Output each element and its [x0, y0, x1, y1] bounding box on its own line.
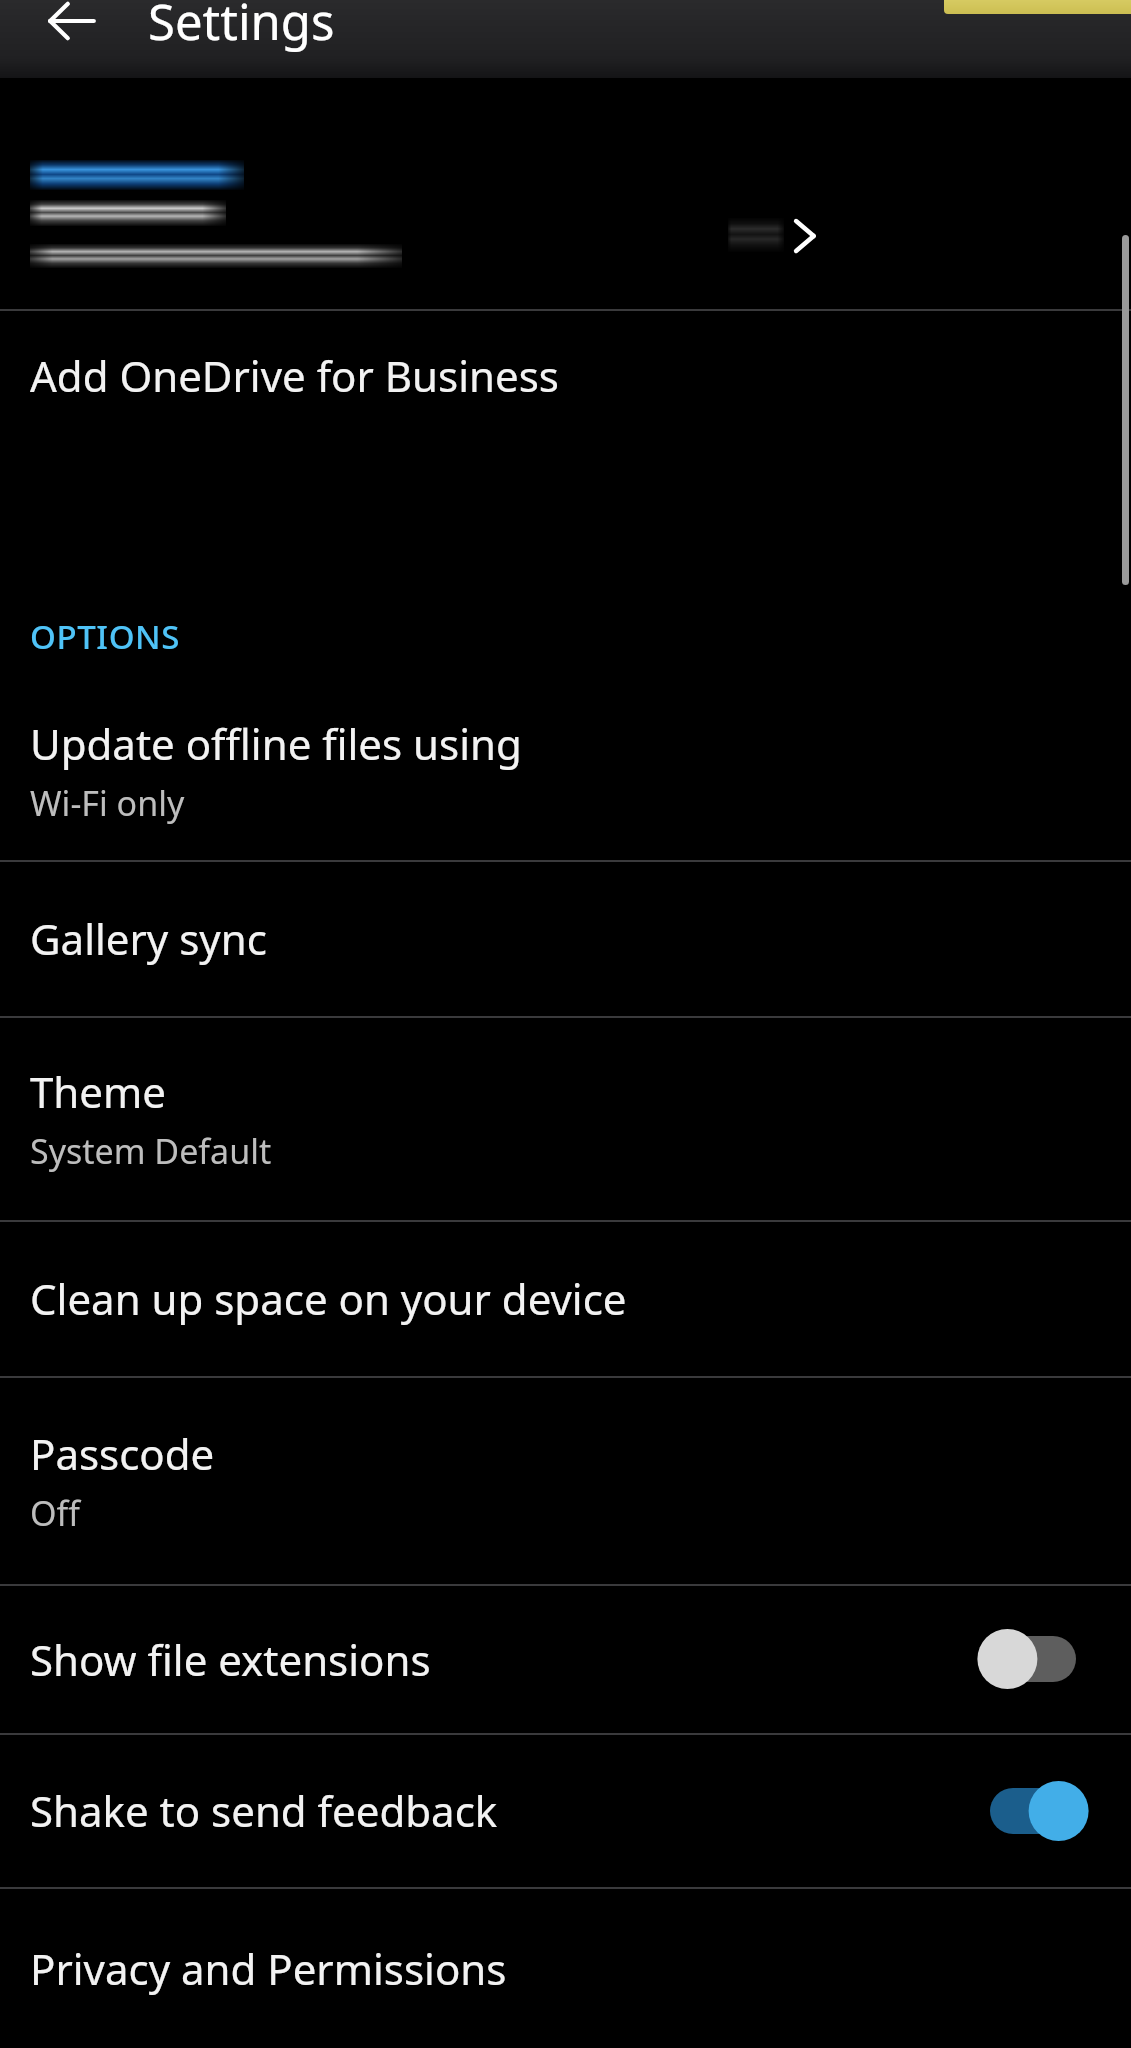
- button[interactable]: Clean up space on your device: [0, 1221, 1131, 1376]
- button[interactable]: Show file extensions: [0, 1585, 1131, 1733]
- other: Open account: [760, 192, 848, 280]
- button[interactable]: Open account: [0, 78, 1131, 308]
- staticText: Settings: [148, 0, 335, 55]
- button[interactable]: Update offline files using: [0, 680, 1131, 860]
- staticText: OPTIONS: [30, 614, 181, 659]
- staticText: Wi-Fi only: [30, 780, 185, 826]
- staticText: Show file extensions: [30, 1631, 431, 1688]
- button[interactable]: Add OneDrive for Business: [0, 310, 1131, 440]
- button[interactable]: Gallery sync: [0, 861, 1131, 1016]
- staticText: Add OneDrive for Business: [30, 347, 559, 404]
- button[interactable]: Passcode: [0, 1377, 1131, 1584]
- button[interactable]: Privacy and Permissions: [0, 1888, 1131, 2048]
- staticText: Theme: [30, 1063, 166, 1120]
- staticText: Gallery sync: [30, 910, 267, 967]
- staticText: Privacy and Permissions: [30, 1940, 507, 1997]
- staticText: System Default: [30, 1128, 272, 1174]
- button[interactable]: Theme: [0, 1017, 1131, 1220]
- button[interactable]: Back: [24, 0, 120, 60]
- staticText: Off: [30, 1490, 80, 1536]
- staticText: Shake to send feedback: [30, 1782, 498, 1839]
- staticText: Update offline files using: [30, 715, 522, 772]
- button[interactable]: Shake to send feedback: [0, 1734, 1131, 1887]
- staticText: Passcode: [30, 1425, 215, 1482]
- staticText: Clean up space on your device: [30, 1270, 627, 1327]
